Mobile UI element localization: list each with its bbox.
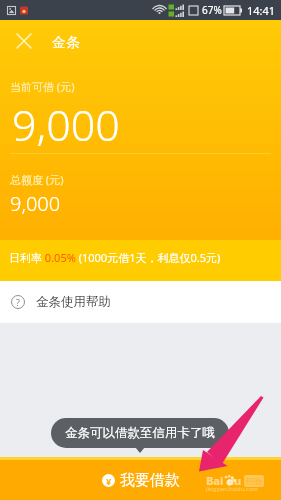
staticText: 金条	[52, 34, 80, 52]
staticText: 9,000	[10, 190, 61, 217]
button[interactable]: ?	[0, 281, 281, 323]
staticText: ¥	[106, 475, 112, 487]
button[interactable]: Close	[10, 27, 38, 55]
staticText: du	[227, 473, 242, 488]
staticText: 我要借款	[120, 471, 180, 490]
staticText: ?	[16, 296, 20, 308]
button[interactable]: 金条可以借款至信用卡了哦	[51, 418, 229, 448]
staticText: 金条使用帮助	[36, 294, 111, 310]
staticText: 日利率 0.05% (1000元借1天，利息仅0.5元)	[9, 250, 221, 265]
staticText: 67%	[202, 3, 222, 17]
staticText: 金条可以借款至信用卡了哦	[65, 425, 215, 441]
staticText: Bai	[206, 473, 224, 488]
staticText: 当前可借 (元)	[10, 79, 75, 94]
staticText: 经验	[246, 476, 262, 486]
staticText: 14:41	[247, 3, 276, 18]
staticText: jingyan.baidu.com	[206, 485, 258, 493]
staticText: 9,000	[12, 95, 120, 154]
button[interactable]: ¥	[0, 460, 281, 500]
staticText: 总额度 (元)	[10, 172, 64, 187]
